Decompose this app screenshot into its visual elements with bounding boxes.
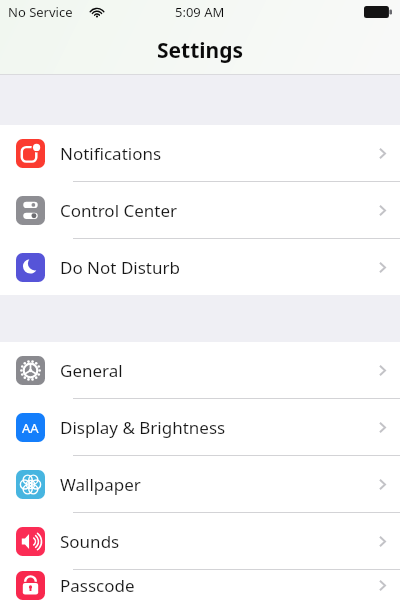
button[interactable]: Notifications xyxy=(0,125,400,181)
button[interactable]: Wallpaper xyxy=(0,456,400,512)
staticText: Display & Brightness xyxy=(60,416,374,439)
staticText: Do Not Disturb xyxy=(60,256,374,279)
button[interactable]: Control Center xyxy=(0,182,400,238)
button[interactable]: Do Not Disturb xyxy=(0,239,400,295)
staticText: Sounds xyxy=(60,530,374,553)
staticText: No Service xyxy=(8,3,73,21)
button[interactable]: AA xyxy=(0,399,400,455)
other: Battery full xyxy=(364,6,392,18)
staticText: General xyxy=(60,359,374,382)
other: Wi-Fi signal xyxy=(89,6,105,18)
staticText: 5:09 AM xyxy=(175,3,225,21)
staticText: Wallpaper xyxy=(60,473,374,496)
staticText: Notifications xyxy=(60,142,374,165)
staticText: Settings xyxy=(0,36,400,65)
staticText: Control Center xyxy=(60,199,374,222)
button[interactable]: General xyxy=(0,342,400,398)
staticText: AA xyxy=(22,419,39,437)
button[interactable]: Sounds xyxy=(0,513,400,569)
staticText: Passcode xyxy=(60,574,374,597)
button[interactable]: Passcode xyxy=(0,570,400,600)
